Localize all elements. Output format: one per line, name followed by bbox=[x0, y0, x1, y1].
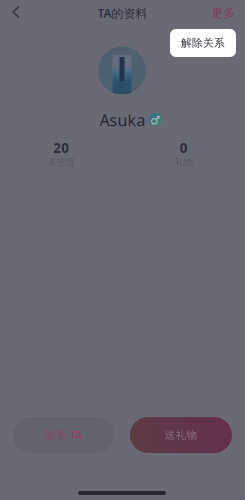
staticText: 联系 TA bbox=[45, 428, 82, 442]
button[interactable]: 联系 TA bbox=[13, 417, 114, 453]
staticText: 更多 bbox=[211, 6, 235, 20]
staticText: 0 bbox=[180, 139, 188, 157]
button[interactable]: 送礼物 bbox=[130, 417, 232, 453]
button[interactable]: 解除关系 bbox=[170, 29, 236, 57]
staticText: 亲密度 bbox=[48, 157, 75, 168]
button[interactable]: 更多 bbox=[203, 1, 243, 25]
staticText: 送礼物 bbox=[164, 428, 197, 441]
staticText: Asuka bbox=[99, 109, 145, 131]
staticText: TA的资料 bbox=[97, 5, 147, 21]
staticText: 解除关系 bbox=[181, 36, 225, 49]
button[interactable]: Back bbox=[2, 0, 30, 24]
staticText: 礼物 bbox=[175, 157, 193, 168]
staticText: 20 bbox=[53, 139, 69, 157]
